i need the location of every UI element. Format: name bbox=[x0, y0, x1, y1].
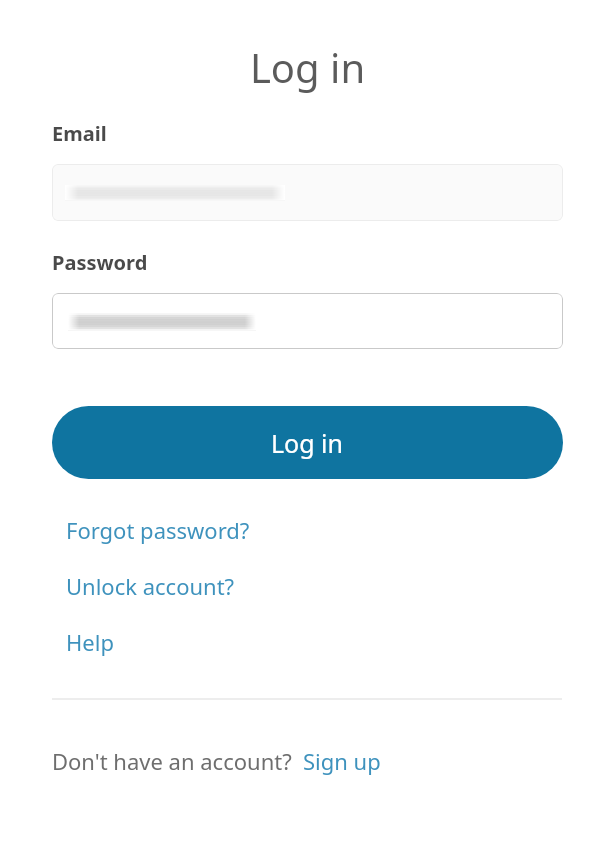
staticText: Unlock account? bbox=[66, 571, 235, 601]
staticText: Don't have an account? bbox=[52, 746, 292, 776]
staticText: Email bbox=[52, 120, 107, 147]
button[interactable]: Unlock account? bbox=[66, 571, 235, 601]
button[interactable] bbox=[52, 293, 563, 349]
staticText: Log in bbox=[271, 426, 344, 460]
button[interactable] bbox=[52, 164, 563, 221]
staticText: Log in bbox=[0, 40, 615, 94]
staticText: Help bbox=[66, 627, 114, 657]
staticText: Forgot password? bbox=[66, 515, 250, 545]
button[interactable]: Sign up bbox=[303, 746, 381, 776]
button[interactable]: Log in bbox=[52, 406, 563, 479]
button[interactable]: Help bbox=[66, 627, 114, 657]
staticText: Sign up bbox=[303, 746, 381, 776]
staticText: Password bbox=[52, 249, 148, 276]
button[interactable]: Forgot password? bbox=[66, 515, 250, 545]
